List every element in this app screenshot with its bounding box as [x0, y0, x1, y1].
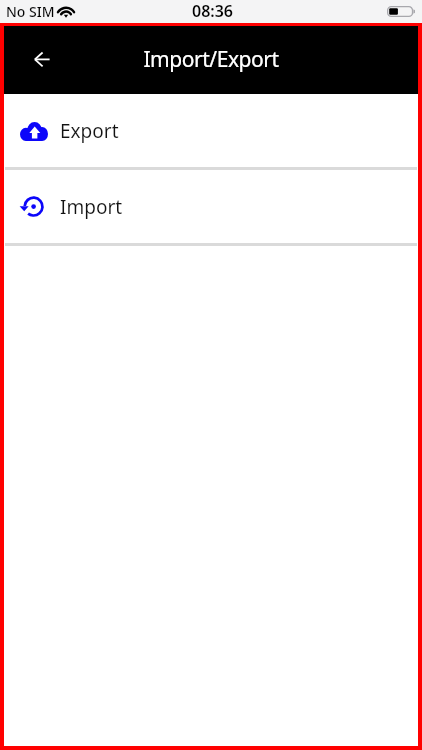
button[interactable]: Back [23, 41, 61, 79]
staticText: Import/Export [143, 45, 279, 74]
button[interactable]: Import [4, 170, 418, 243]
staticText: 08:36 [192, 0, 234, 22]
staticText: No SIM [6, 2, 55, 21]
staticText: Export [60, 118, 119, 144]
staticText: Import [60, 194, 123, 220]
button[interactable]: Export [4, 94, 418, 167]
